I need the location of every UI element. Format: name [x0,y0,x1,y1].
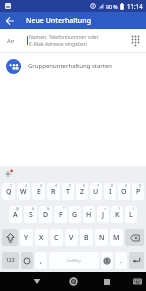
button[interactable]: 3 [32,183,45,200]
staticText: V [69,233,74,243]
staticText: C [54,233,59,243]
button[interactable]: ) [125,206,137,223]
button[interactable]: 2 [17,183,30,200]
staticText: W [20,187,27,197]
staticText: Gruppenunterhaltung starten [28,62,113,70]
staticText: 7 [97,183,100,188]
staticText: E [37,187,41,197]
button[interactable]: Gruppenunterhaltung starten [0,53,146,79]
button[interactable]: 4 [47,183,60,200]
button[interactable]: 123 [2,252,19,269]
button[interactable]: 7 [90,183,102,200]
button[interactable]: C [50,229,63,246]
staticText: 2 [25,183,28,188]
staticText: - [77,206,79,211]
button[interactable]: X [35,229,48,246]
button[interactable]: * [54,206,67,223]
button[interactable] [124,29,146,52]
staticText: 3 [40,183,43,188]
staticText: An [7,37,15,45]
staticText: 0 [139,183,142,188]
staticText: U [93,187,99,197]
staticText: S [29,210,33,220]
staticText: = [104,206,107,211]
staticText: Q [6,187,12,197]
staticText: H [86,210,92,220]
button[interactable]: 1 [2,183,15,200]
staticText: K [115,210,120,220]
button[interactable]: B [80,229,93,246]
staticText: R [51,187,56,197]
staticText: 11:14 [127,2,143,10]
staticText: + [90,206,93,211]
staticText: Neue Unterhaltung [26,16,91,26]
staticText: L [129,210,133,220]
button[interactable] [29,274,45,289]
staticText: ( [119,206,121,211]
staticText: 4 [55,183,58,188]
staticText: * [63,206,65,211]
button[interactable]: + [83,206,95,223]
staticText: , [40,256,42,266]
staticText: ) [133,206,135,211]
staticText: SwiftKey [67,258,81,263]
button[interactable]: Y [20,229,33,246]
button[interactable]: SwiftKey [49,252,99,269]
staticText: A [13,210,18,220]
button[interactable]: = [97,206,109,223]
button[interactable] [125,229,144,246]
button[interactable]: 0 [132,183,144,200]
staticText: I [109,187,112,197]
staticText: @ [16,206,20,211]
button[interactable]: An [0,29,146,52]
staticText: 9 [125,183,128,188]
staticText: Namen, Telefonnummer oder E-Mail-Adresse… [29,34,124,48]
staticText: Y [24,233,29,243]
staticText: 123 [6,257,15,264]
button[interactable]: 5 [62,183,74,200]
staticText: 6 [83,183,86,188]
button[interactable] [101,252,113,269]
button[interactable] [2,229,18,246]
button[interactable]: V [65,229,78,246]
button[interactable]: 6 [76,183,88,200]
staticText: X [39,233,44,243]
staticText: M [113,233,120,243]
staticText: O [121,187,127,197]
button[interactable]: 9 [118,183,130,200]
button[interactable] [129,252,144,269]
button[interactable]: , [35,252,47,269]
staticText: B [84,233,89,243]
button[interactable] [2,168,14,180]
staticText: 90 % [106,3,118,10]
button[interactable]: . [115,252,127,269]
staticText: 1 [10,183,13,188]
button[interactable]: ( [111,206,123,223]
staticText: & [47,206,50,211]
button[interactable] [65,274,81,289]
button[interactable]: M [110,229,123,246]
staticText: T [66,187,70,197]
button[interactable]: - [69,206,81,223]
button[interactable]: # [24,206,37,223]
staticText: P [136,187,141,197]
staticText: 8 [111,183,114,188]
button[interactable]: N [95,229,108,246]
button[interactable]: 8 [104,183,116,200]
button[interactable] [21,252,33,269]
button[interactable]: & [39,206,52,223]
staticText: G [72,210,78,220]
staticText: D [43,210,49,220]
staticText: J [102,210,105,220]
staticText: 5 [69,183,72,188]
staticText: Z [80,187,85,197]
staticText: # [32,206,35,211]
button[interactable] [129,274,145,289]
staticText: F [59,210,63,220]
staticText: . [120,256,122,266]
button[interactable] [99,274,115,289]
staticText: N [99,233,105,243]
button[interactable] [0,12,20,29]
button[interactable]: @ [9,206,22,223]
